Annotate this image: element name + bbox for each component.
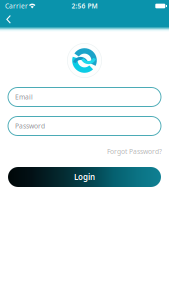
staticText: Email (15, 93, 33, 101)
staticText: Carrier (5, 2, 28, 10)
button[interactable]: Back (0, 10, 22, 29)
staticText: 2:56 PM (71, 2, 97, 10)
staticText: Login (74, 172, 95, 182)
staticText: Forgot Password? (107, 147, 162, 156)
button[interactable]: Forgot Password? (106, 145, 163, 157)
button[interactable]: Login (8, 167, 161, 187)
staticText: Password (15, 122, 45, 130)
